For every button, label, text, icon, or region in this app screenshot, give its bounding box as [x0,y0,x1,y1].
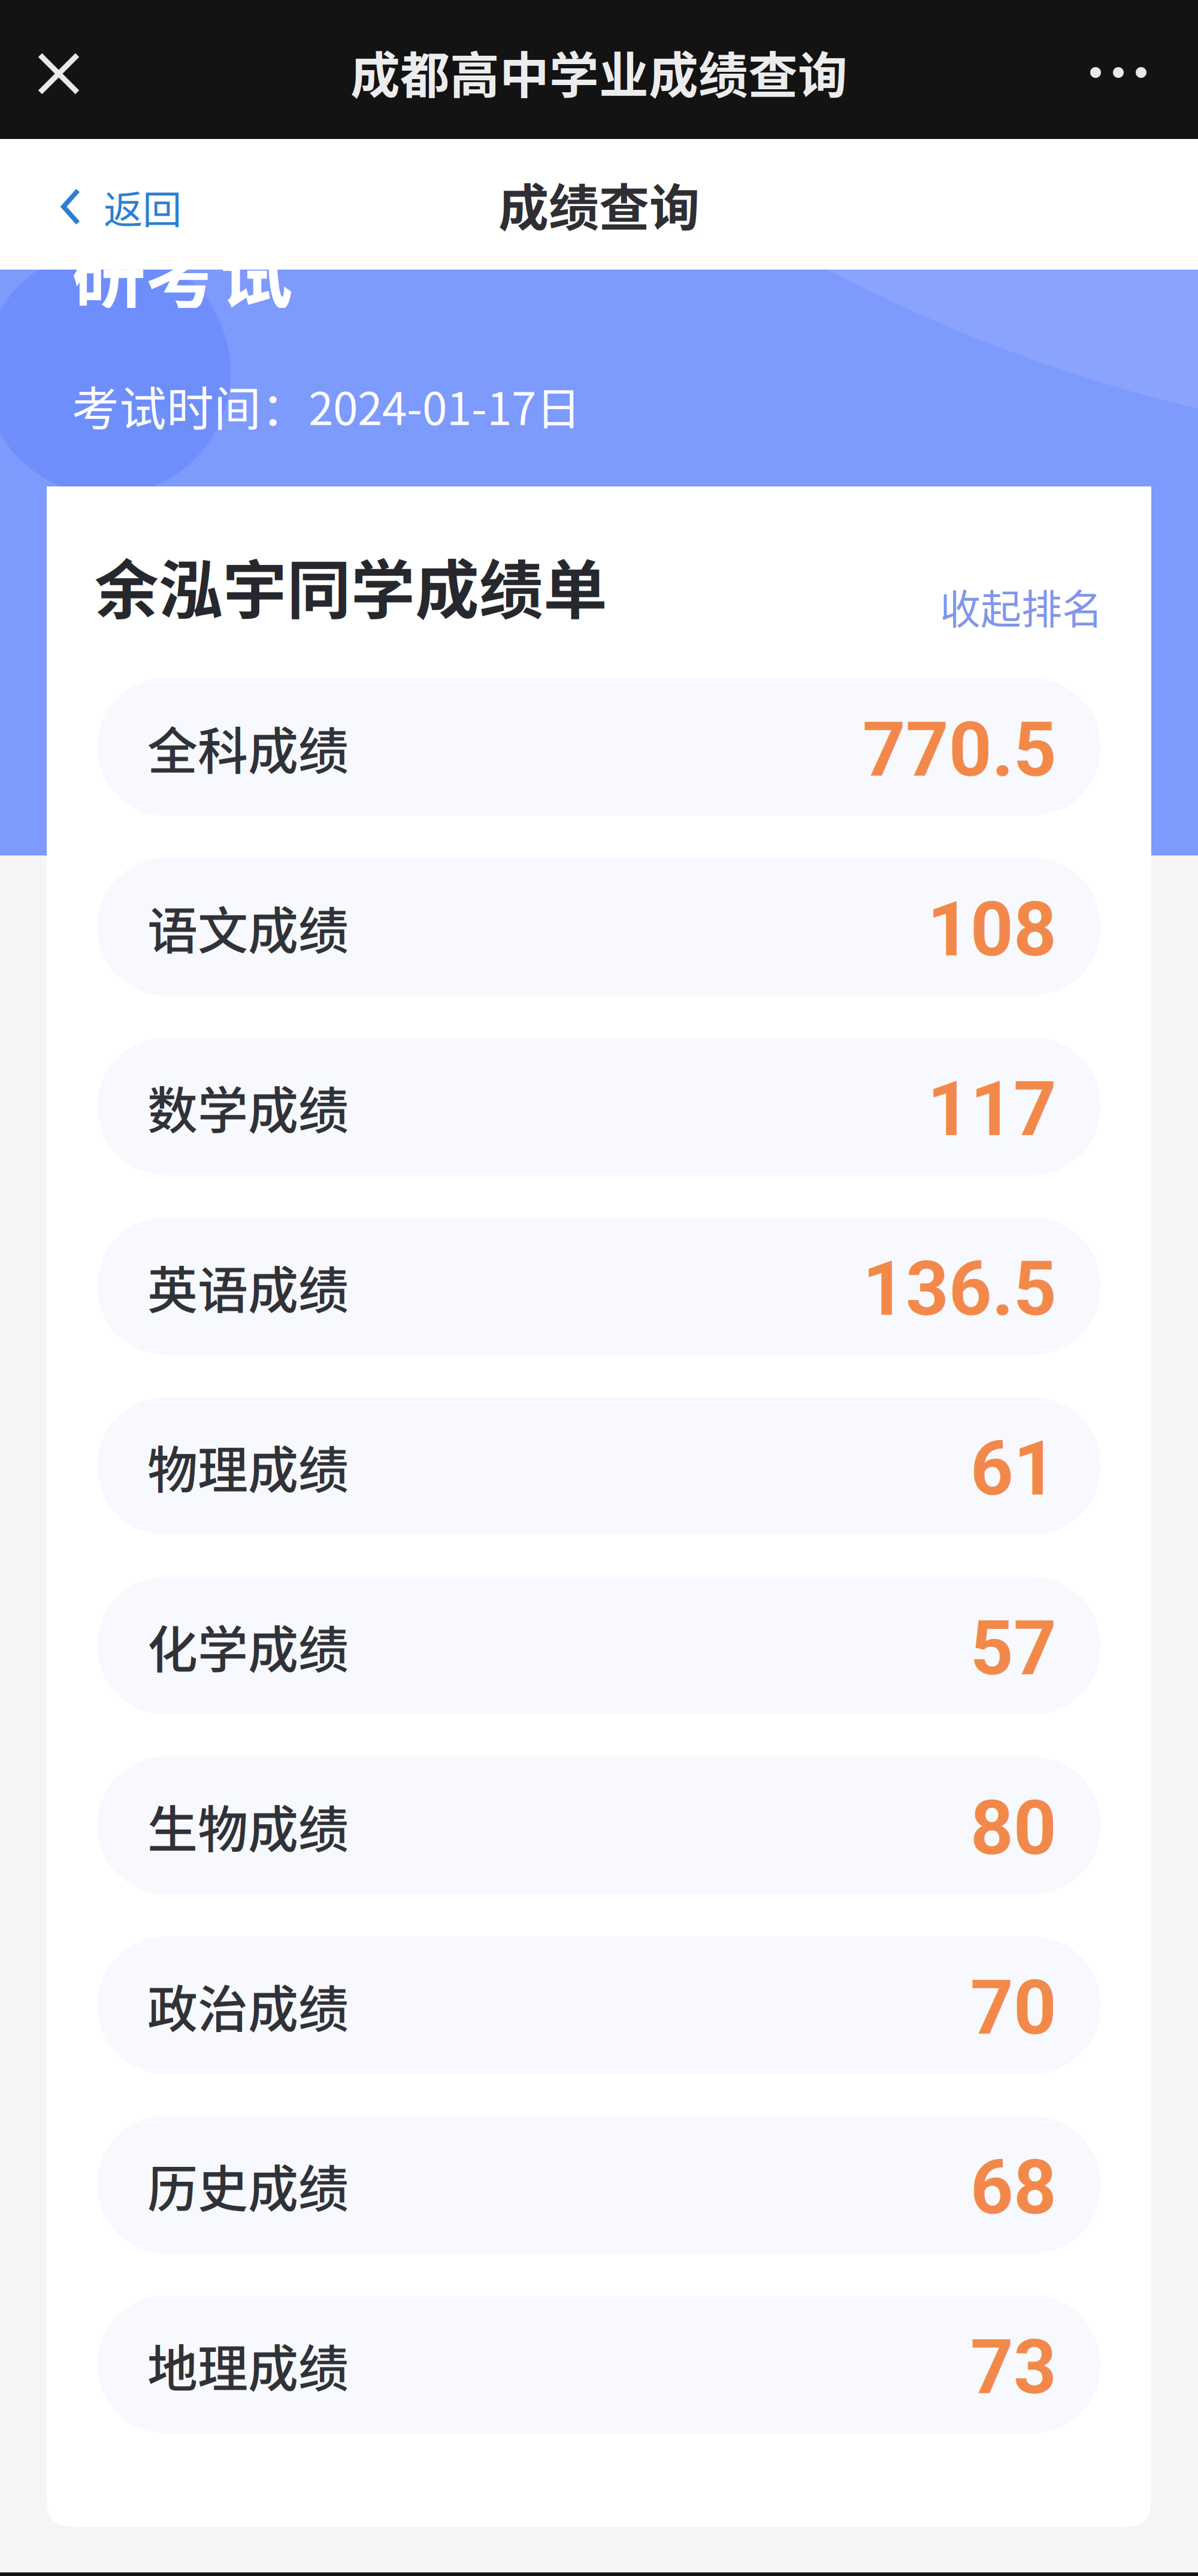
button[interactable]: 返回 [43,162,198,252]
staticText: 英语成绩 [147,1250,349,1323]
button[interactable]: 语文成绩 [97,858,1101,996]
staticText: 历史成绩 [147,2149,349,2222]
button[interactable]: 收起排名 [916,557,1127,656]
button[interactable]: 更多 [1070,28,1166,117]
button[interactable]: 全科成绩 [97,678,1101,816]
button[interactable]: 化学成绩 [97,1577,1101,1715]
staticText: 考试时间： [72,371,308,440]
button[interactable]: 历史成绩 [97,2116,1101,2254]
staticText: 成都高中学业成绩查询 [350,36,848,108]
button[interactable]: 物理成绩 [97,1397,1101,1535]
button[interactable]: 生物成绩 [97,1756,1101,1894]
button[interactable]: 地理成绩 [97,2296,1101,2433]
staticText: 68 [970,2144,1057,2232]
staticText: 物理成绩 [147,1430,349,1503]
staticText: 地理成绩 [147,2329,349,2402]
staticText: 80 [970,1784,1057,1872]
staticText: 政治成绩 [147,1969,349,2042]
staticText: 生物成绩 [147,1790,349,1862]
staticText: 70 [970,1964,1057,2052]
staticText: 成绩查询 [498,168,700,241]
staticText: 57 [970,1605,1057,1693]
staticText: 770.5 [863,706,1057,794]
staticText: 收起排名 [940,577,1103,636]
button[interactable]: 英语成绩 [97,1217,1101,1355]
staticText: 返回 [104,178,181,235]
staticText: 117 [927,1066,1057,1154]
button[interactable]: 关闭 [14,29,104,119]
staticText: 化学成绩 [147,1610,349,1683]
staticText: 全科成绩 [147,711,349,784]
staticText: 136.5 [863,1245,1057,1333]
button[interactable]: 数学成绩 [97,1038,1101,1175]
staticText: 余泓宇同学成绩单 [95,539,607,632]
button[interactable]: 政治成绩 [97,1936,1101,2074]
staticText: 数学成绩 [147,1071,349,1144]
staticText: 61 [970,1425,1057,1513]
staticText: 研考试 [72,217,293,323]
staticText: 73 [970,2324,1057,2412]
staticText: 108 [927,886,1057,974]
staticText: 2024-01-17日 [308,373,581,438]
staticText: 语文成绩 [147,891,349,964]
